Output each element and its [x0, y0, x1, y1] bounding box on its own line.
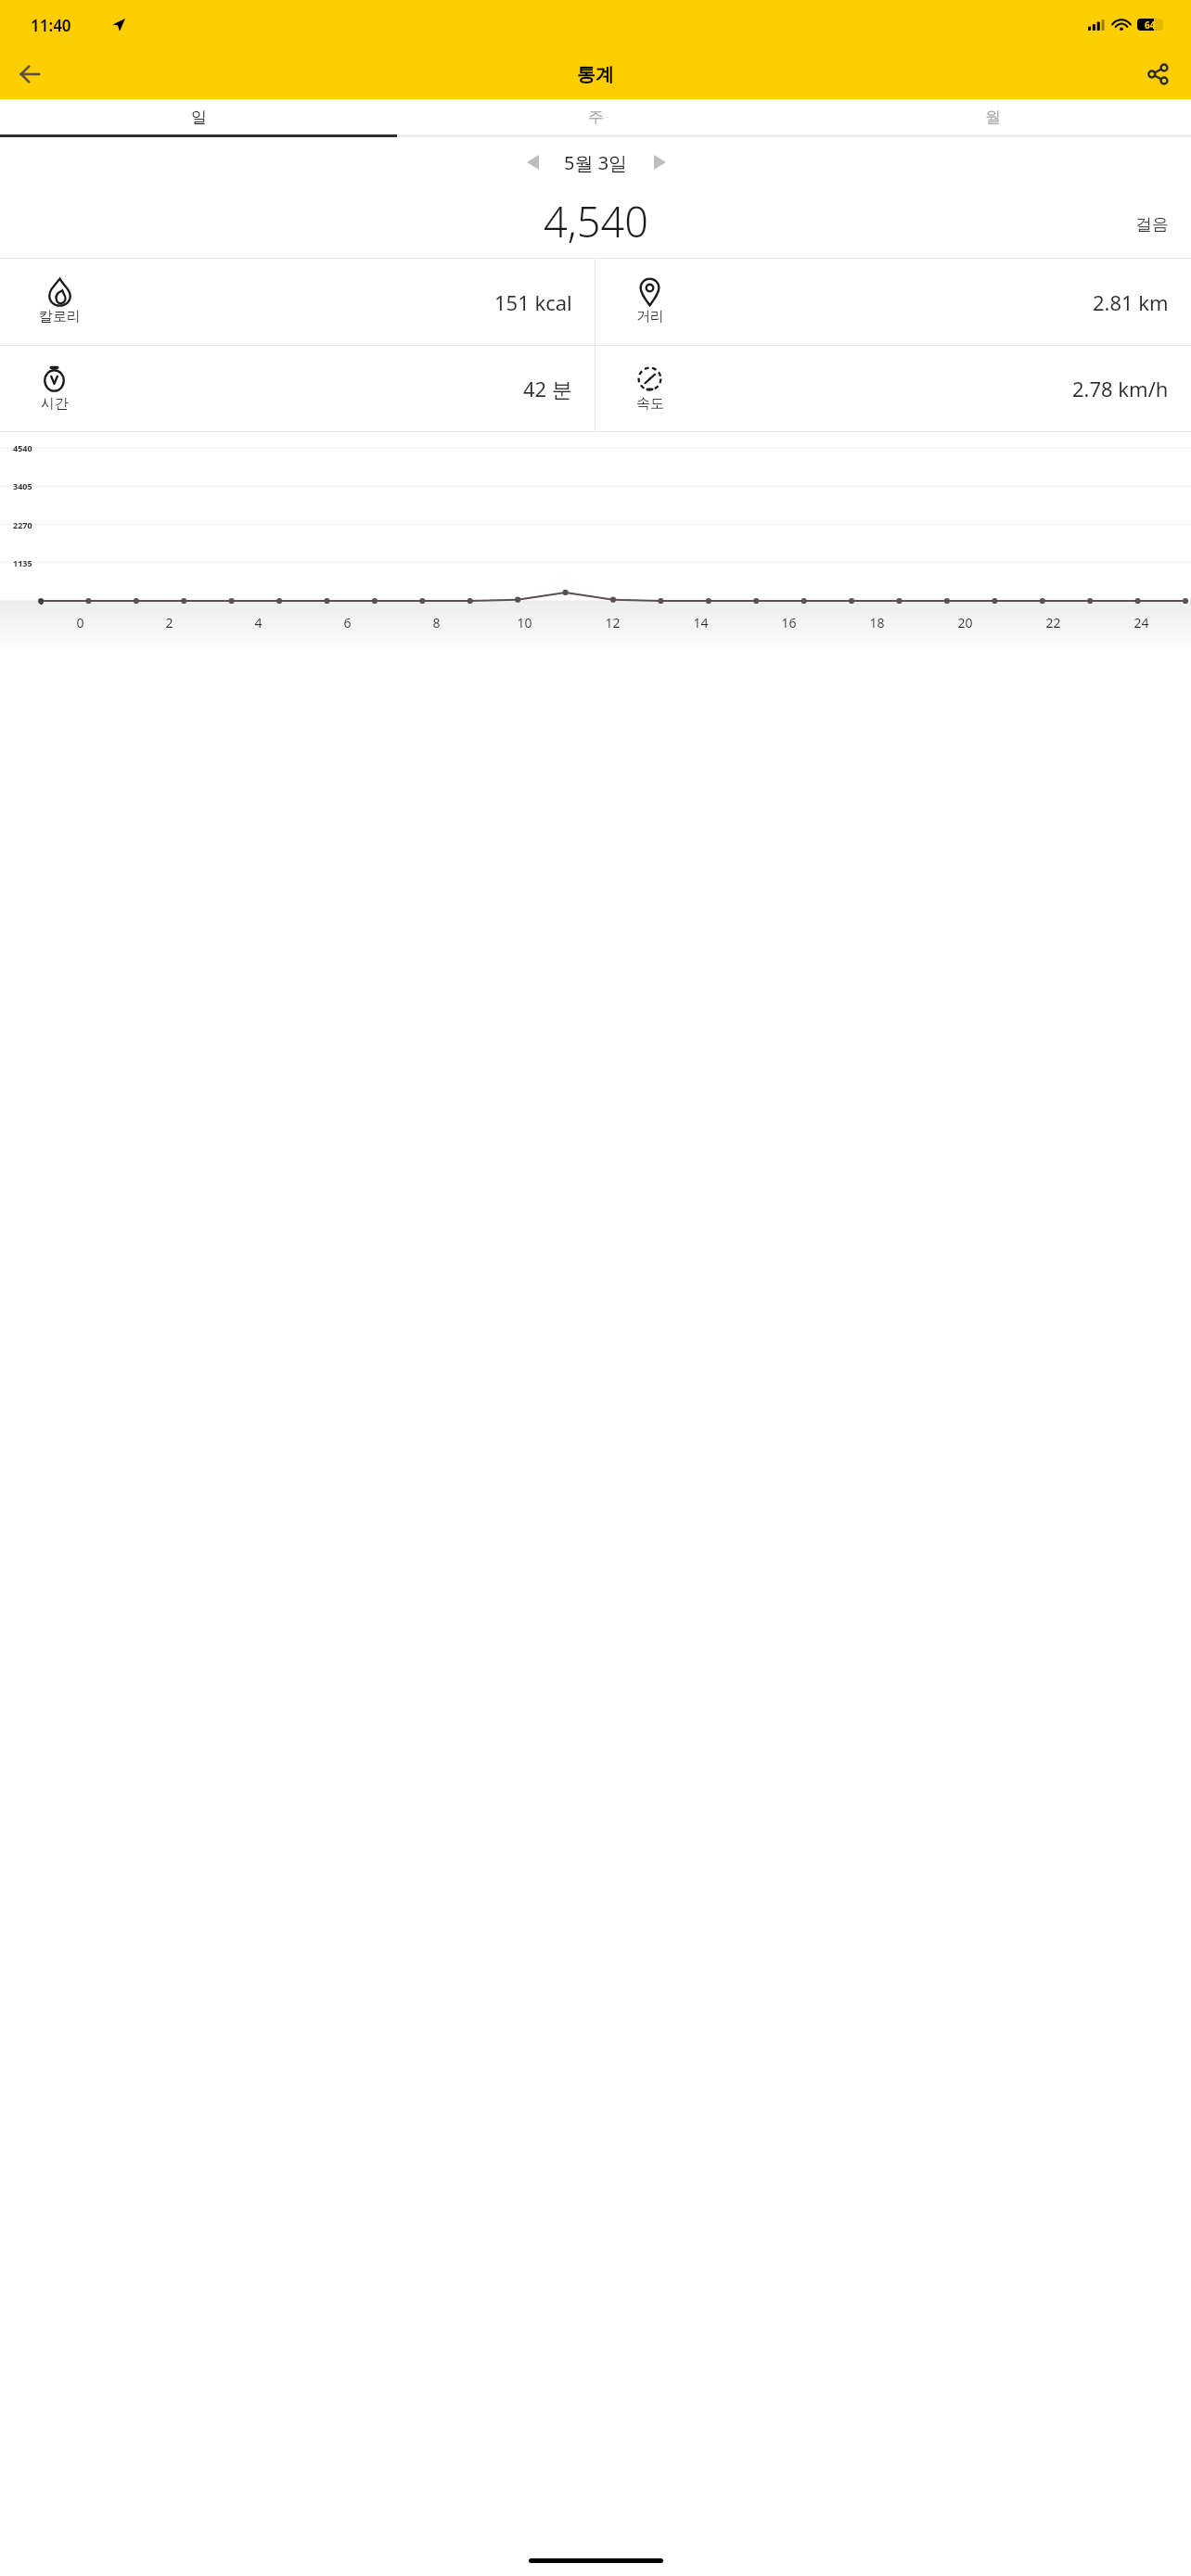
button[interactable]: 주 [397, 99, 794, 134]
staticText: 151 kcal [494, 288, 572, 316]
staticText: 일 [191, 108, 207, 127]
staticText: 64 [1145, 19, 1156, 31]
staticText: 통계 [577, 63, 614, 86]
staticText: 월 [985, 108, 1001, 127]
staticText: 42 분 [523, 375, 572, 402]
staticText: 3405 [13, 480, 32, 491]
staticText: 4 [254, 614, 263, 631]
staticText: 5월 3일 [564, 150, 628, 175]
staticText: 2270 [13, 519, 32, 530]
button[interactable]: 속도 [595, 346, 1191, 431]
staticText: 18 [869, 614, 885, 631]
staticText: 24 [1133, 614, 1149, 631]
staticText: 12 [605, 614, 621, 631]
staticText: 10 [517, 614, 532, 631]
staticText: 0 [76, 614, 84, 631]
button[interactable]: 거리 [595, 259, 1191, 345]
staticText: 칼로리 [39, 308, 81, 325]
button[interactable]: Back [7, 52, 52, 96]
staticText: 14 [693, 614, 709, 631]
staticText: 1135 [13, 557, 32, 568]
button[interactable]: 칼로리 [0, 259, 595, 345]
staticText: 0 [39, 595, 45, 606]
staticText: 2.81 km [1093, 288, 1169, 316]
staticText: 2 [165, 614, 173, 631]
button[interactable]: 시간 [0, 346, 595, 431]
staticText: 20 [957, 614, 973, 631]
button[interactable]: Next day [639, 142, 680, 183]
staticText: 8 [432, 614, 441, 631]
staticText: 속도 [636, 395, 664, 413]
staticText: 22 [1045, 614, 1061, 631]
staticText: 6 [343, 614, 352, 631]
staticText: 거리 [636, 308, 664, 325]
staticText: 시간 [41, 395, 69, 413]
button[interactable]: Previous day [512, 142, 553, 183]
staticText: 11:40 [31, 15, 71, 36]
staticText: 4,540 [544, 193, 648, 249]
staticText: 걸음 [1135, 214, 1169, 236]
staticText: 16 [781, 614, 797, 631]
button[interactable]: 월 [794, 99, 1191, 134]
button[interactable]: 일 [0, 99, 397, 134]
button[interactable]: Share [1135, 52, 1180, 96]
staticText: 2.78 km/h [1072, 375, 1169, 402]
staticText: 주 [588, 108, 604, 127]
staticText: 4540 [13, 442, 32, 453]
